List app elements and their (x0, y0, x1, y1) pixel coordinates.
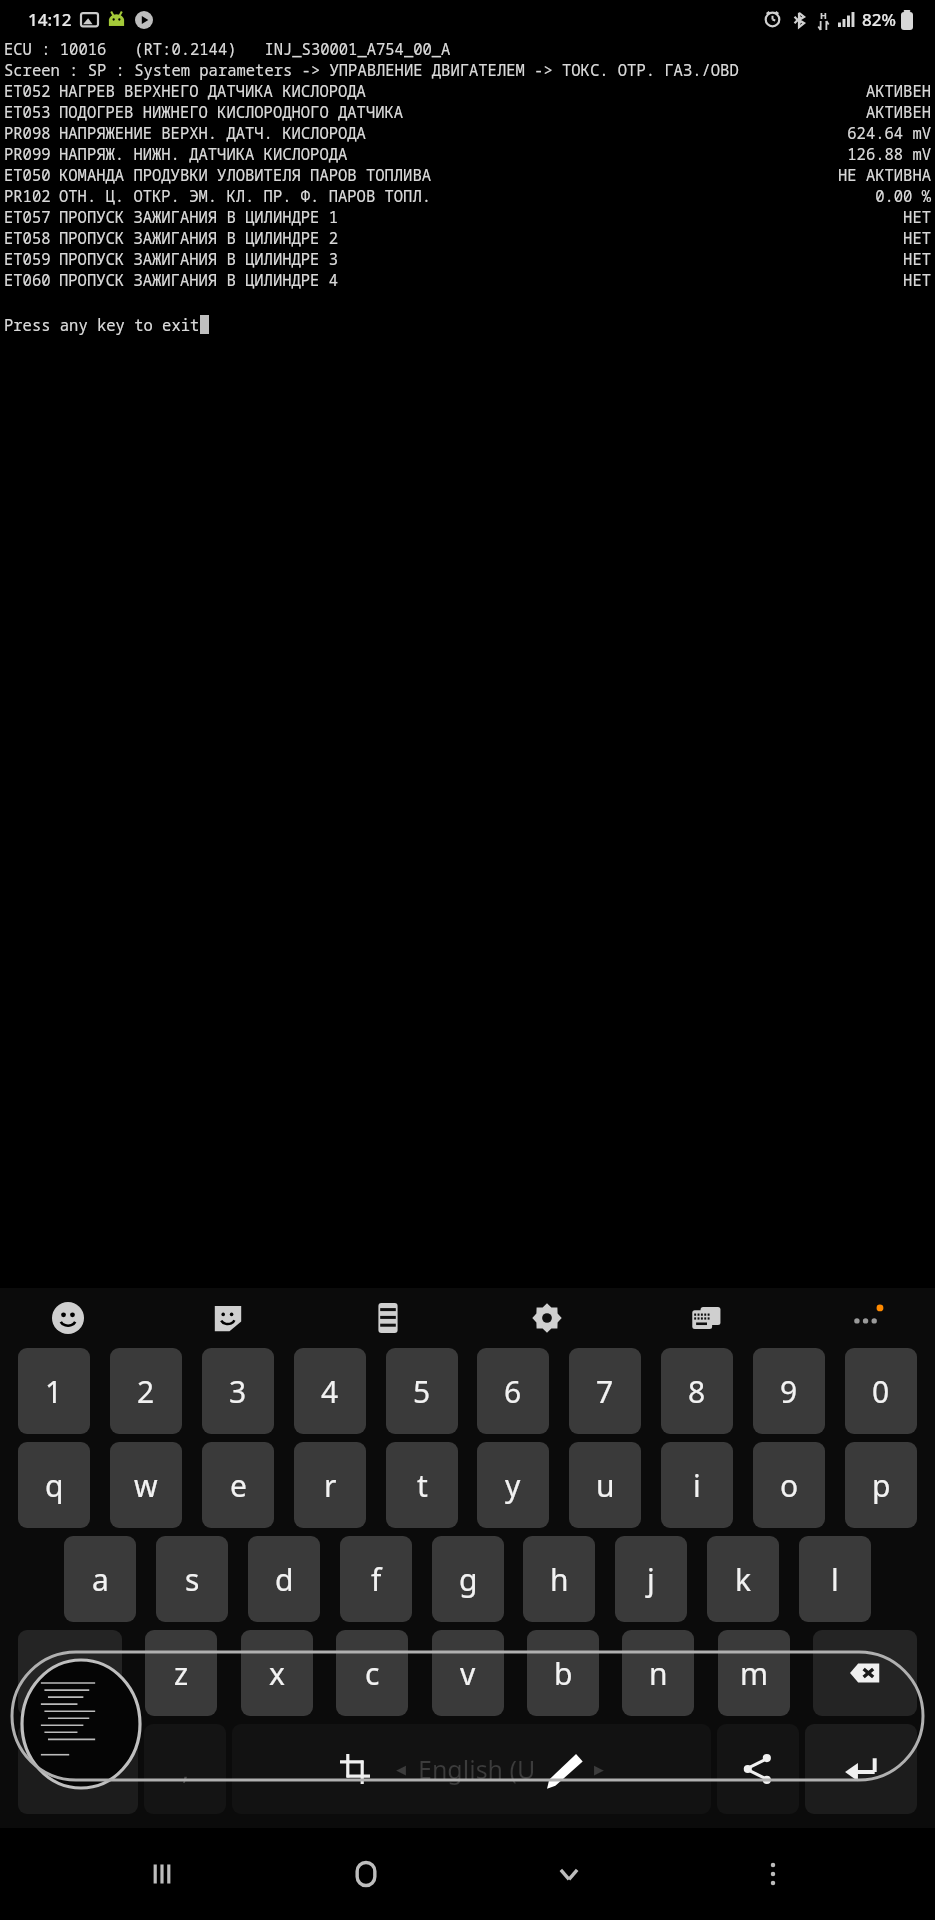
staticText: PR102 (4, 185, 51, 206)
staticText: НЕ АКТИВНА (821, 164, 931, 185)
button[interactable]: u (569, 1442, 641, 1528)
button[interactable]: t (386, 1442, 458, 1528)
button[interactable]: 4 (294, 1348, 366, 1434)
button[interactable]: i (661, 1442, 733, 1528)
staticText: ET059 (4, 248, 51, 269)
staticText: 0.00 % (821, 185, 931, 206)
button[interactable]: m (718, 1630, 790, 1716)
button[interactable]: Settings (525, 1296, 569, 1340)
button[interactable]: Shift (18, 1630, 122, 1716)
button[interactable]: j (615, 1536, 687, 1622)
staticText: 4 (321, 1371, 339, 1412)
staticText: Screen : SP : System parameters -> УПРАВ… (4, 59, 739, 80)
staticText: НЕТ (821, 227, 931, 248)
staticText: , (182, 1752, 189, 1787)
button[interactable]: 6 (477, 1348, 549, 1434)
staticText: PR099 (4, 143, 51, 164)
staticText: e (230, 1465, 247, 1506)
staticText: l (831, 1559, 839, 1600)
button[interactable]: k (707, 1536, 779, 1622)
button[interactable]: r (294, 1442, 366, 1528)
staticText: ▶ (594, 1762, 604, 1777)
staticText: f (371, 1559, 382, 1600)
staticText: НАПРЯЖ. НИЖН. ДАТЧИКА КИСЛОРОДА (59, 143, 348, 164)
button[interactable]: Clipboard (366, 1296, 410, 1340)
button[interactable]: , (144, 1724, 226, 1814)
staticText: v (460, 1653, 476, 1694)
staticText: k (735, 1559, 752, 1600)
button[interactable]: Symbols (18, 1724, 138, 1814)
button[interactable]: f (340, 1536, 412, 1622)
staticText: 8 (688, 1371, 706, 1412)
button[interactable]: 2 (110, 1348, 182, 1434)
button[interactable]: 9 (753, 1348, 825, 1434)
staticText: ET052 (4, 80, 51, 101)
button[interactable]: 8 (661, 1348, 733, 1434)
staticText: КОМАНДА ПРОДУВКИ УЛОВИТЕЛЯ ПАРОВ ТОПЛИВА (59, 164, 432, 185)
button[interactable]: z (145, 1630, 217, 1716)
staticText: ОТН. Ц. ОТКР. ЭМ. КЛ. ПР. Ф. ПАРОВ ТОПЛ. (59, 185, 432, 206)
button[interactable]: n (622, 1630, 694, 1716)
button[interactable]: 7 (569, 1348, 641, 1434)
button[interactable]: c (336, 1630, 408, 1716)
button[interactable]: x (241, 1630, 313, 1716)
staticText: 9 (780, 1371, 798, 1412)
staticText: 7 (596, 1371, 614, 1412)
button[interactable]: e (202, 1442, 274, 1528)
staticText: m (740, 1653, 769, 1694)
button[interactable]: More options (845, 1296, 889, 1340)
staticText: 3 (229, 1371, 247, 1412)
button[interactable]: p (845, 1442, 917, 1528)
staticText: ПРОПУСК ЗАЖИГАНИЯ В ЦИЛИНДРЕ 2 (59, 227, 339, 248)
button[interactable]: 5 (386, 1348, 458, 1434)
button[interactable]: g (432, 1536, 504, 1622)
button[interactable]: More (741, 1842, 805, 1906)
button[interactable]: Hide keyboard (537, 1842, 601, 1906)
button[interactable]: q (18, 1442, 90, 1528)
button[interactable]: 1 (18, 1348, 90, 1434)
staticText: w (134, 1465, 158, 1506)
staticText: a (92, 1559, 109, 1600)
button[interactable]: Home (334, 1842, 398, 1906)
staticText: i (693, 1465, 701, 1506)
button[interactable]: v (432, 1630, 504, 1716)
button[interactable]: Share (717, 1724, 799, 1814)
button[interactable]: l (799, 1536, 871, 1622)
staticText: y (505, 1465, 521, 1506)
staticText: ECU : 10016 (RT:0.2144) INJ_S30001_A754_… (4, 38, 451, 59)
button[interactable]: a (64, 1536, 136, 1622)
button[interactable]: Enter (805, 1724, 917, 1814)
staticText: ET053 (4, 101, 51, 122)
staticText: 2 (137, 1371, 155, 1412)
staticText: j (647, 1559, 655, 1600)
staticText: 14:12 (28, 8, 72, 31)
staticText: НАГРЕВ ВЕРХНЕГО ДАТЧИКА КИСЛОРОДА (59, 80, 366, 101)
button[interactable]: d (248, 1536, 320, 1622)
staticText: ПРОПУСК ЗАЖИГАНИЯ В ЦИЛИНДРЕ 4 (59, 269, 339, 290)
staticText: English (U (418, 1752, 536, 1786)
staticText: ПРОПУСК ЗАЖИГАНИЯ В ЦИЛИНДРЕ 1 (59, 206, 339, 227)
button[interactable]: 0 (845, 1348, 917, 1434)
staticText: x (269, 1653, 285, 1694)
button[interactable]: Stickers (206, 1296, 250, 1340)
button[interactable]: y (477, 1442, 549, 1528)
button[interactable]: b (527, 1630, 599, 1716)
button[interactable]: w (110, 1442, 182, 1528)
button[interactable]: Recents (130, 1842, 194, 1906)
staticText: 0 (872, 1371, 890, 1412)
button[interactable]: s (156, 1536, 228, 1622)
button[interactable]: ◀ (232, 1724, 711, 1814)
staticText: g (459, 1559, 478, 1600)
staticText: s (185, 1559, 200, 1600)
staticText: z (174, 1653, 189, 1694)
button[interactable]: Backspace (813, 1630, 917, 1716)
button[interactable]: o (753, 1442, 825, 1528)
staticText: 5 (413, 1371, 431, 1412)
button[interactable]: Keyboard modes (685, 1296, 729, 1340)
button[interactable]: Emoji (46, 1296, 90, 1340)
staticText: 82% (862, 8, 896, 31)
button[interactable]: 3 (202, 1348, 274, 1434)
button[interactable]: h (523, 1536, 595, 1622)
staticText: Press any key to exit (4, 314, 200, 335)
staticText: НАПРЯЖЕНИЕ ВЕРХН. ДАТЧ. КИСЛОРОДА (59, 122, 366, 143)
